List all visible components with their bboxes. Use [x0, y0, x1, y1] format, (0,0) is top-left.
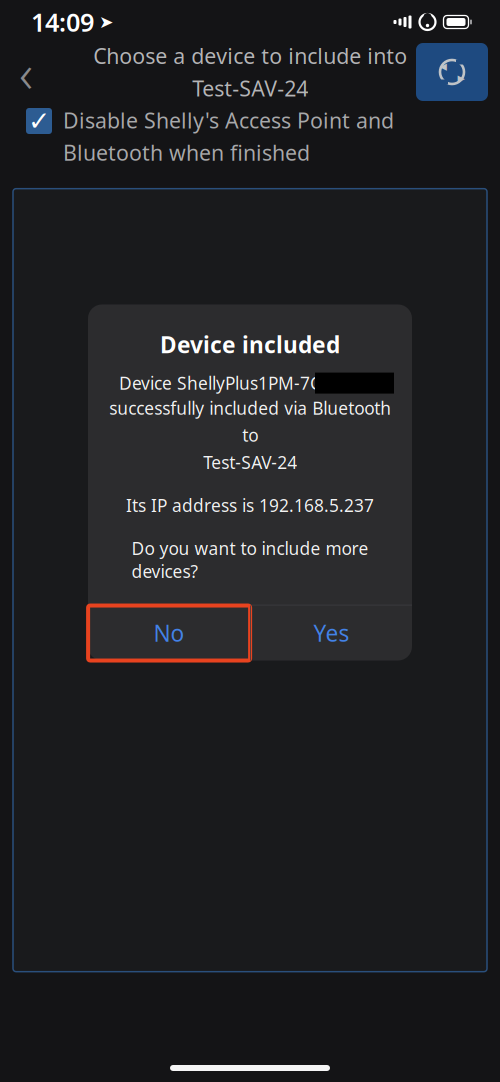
staticText: Device ShellyPlus1PM-7C870000	[119, 372, 381, 395]
staticText: Device included	[160, 329, 340, 360]
button[interactable]: ✓	[26, 106, 474, 167]
staticText: ‹	[19, 37, 33, 107]
staticText: Yes	[313, 618, 349, 648]
button[interactable]: Yes	[251, 605, 412, 660]
button[interactable]: Refresh	[416, 43, 488, 101]
staticText: successfully included via Bluetooth to T…	[109, 397, 391, 474]
staticText: Its IP address is 192.168.5.237	[126, 494, 374, 517]
staticText: ✓	[28, 106, 50, 136]
button[interactable]: No	[88, 605, 250, 660]
staticText: ▸	[457, 70, 464, 86]
button[interactable]: Back	[0, 44, 52, 100]
staticText: ➤	[99, 12, 114, 32]
staticText: Choose a device to include into Test-SAV…	[93, 42, 407, 102]
staticText: ◂	[439, 58, 446, 74]
staticText: No	[154, 618, 185, 648]
staticText: 14:09	[31, 5, 94, 39]
staticText: Disable Shelly's Access Point and Blueto…	[63, 106, 394, 167]
staticText: Do you want to include more devices?	[131, 537, 368, 583]
